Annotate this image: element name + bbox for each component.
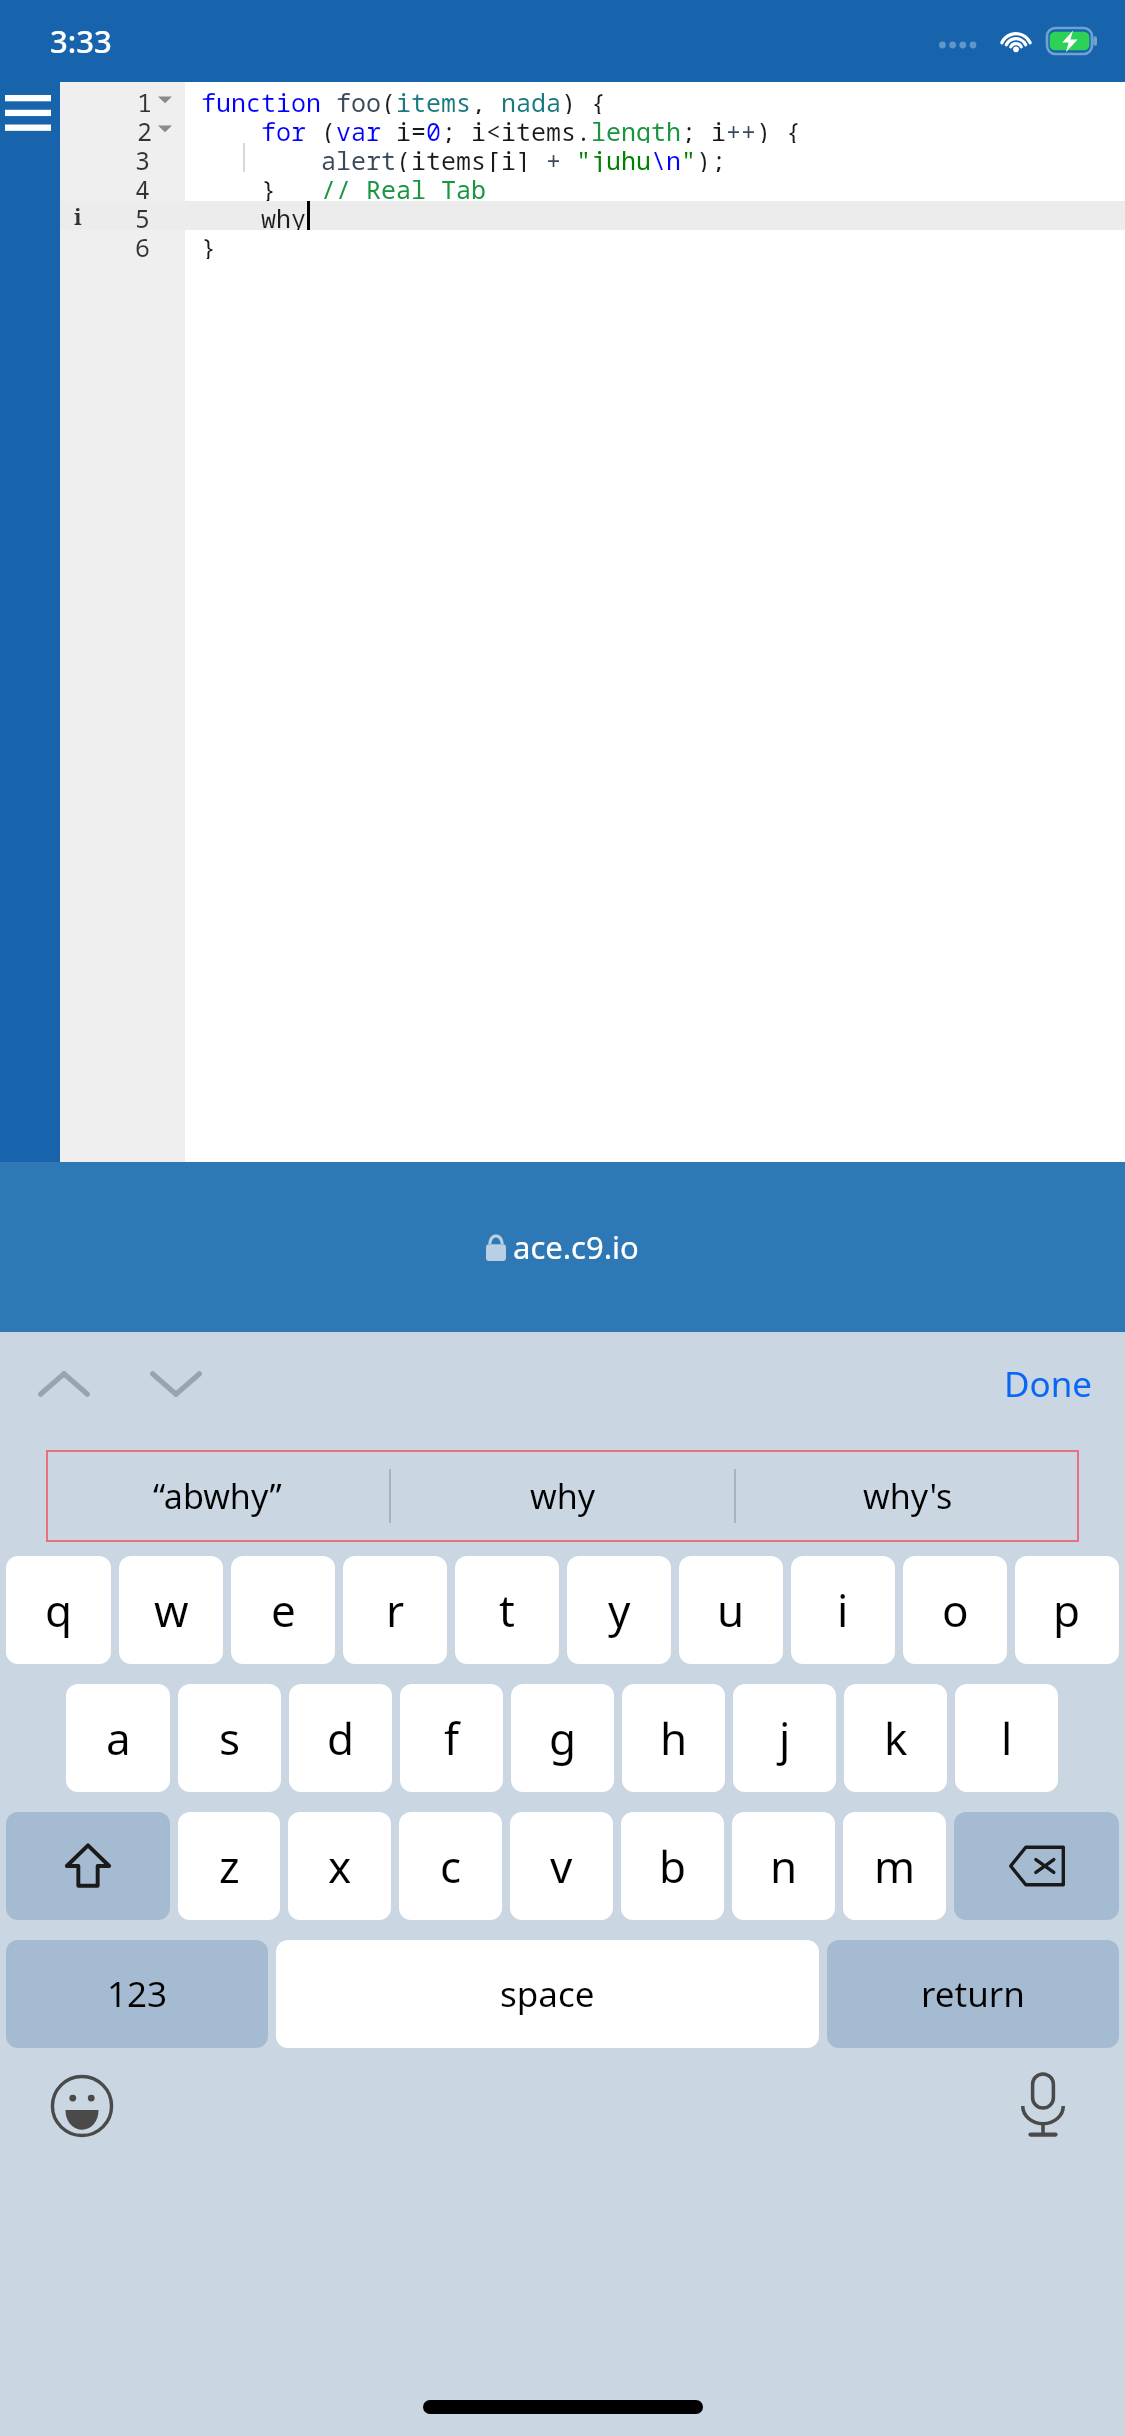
button[interactable]: Shift bbox=[6, 1812, 170, 1920]
button[interactable]: x bbox=[288, 1812, 391, 1920]
button[interactable]: d bbox=[289, 1684, 392, 1792]
button[interactable]: e bbox=[231, 1556, 335, 1664]
button[interactable]: Menu bbox=[0, 82, 60, 1162]
button[interactable]: z bbox=[178, 1812, 280, 1920]
button[interactable]: o bbox=[903, 1556, 1007, 1664]
staticText: t bbox=[499, 1580, 515, 1640]
staticText: alert(items[i] + "juhu\n"); bbox=[201, 143, 727, 172]
button[interactable]: Done bbox=[972, 1344, 1125, 1424]
button[interactable]: r bbox=[343, 1556, 447, 1664]
staticText: f bbox=[444, 1708, 460, 1768]
staticText: h bbox=[660, 1708, 688, 1768]
staticText: z bbox=[219, 1836, 240, 1896]
staticText: s bbox=[219, 1708, 241, 1768]
staticText: w bbox=[154, 1580, 189, 1640]
button[interactable]: ace.c9.io bbox=[0, 1162, 1125, 1332]
staticText: 123 bbox=[107, 1970, 168, 2018]
staticText: space bbox=[500, 1970, 595, 2018]
staticText: for (var i=0; i<items.length; i++) { bbox=[201, 114, 802, 143]
button[interactable]: b bbox=[621, 1812, 724, 1920]
staticText: 2 bbox=[137, 114, 153, 143]
staticText: why's bbox=[863, 1473, 953, 1519]
staticText: d bbox=[327, 1708, 355, 1768]
staticText: i bbox=[74, 201, 82, 230]
button[interactable]: i bbox=[791, 1556, 895, 1664]
staticText: i bbox=[837, 1580, 849, 1640]
staticText: m bbox=[874, 1836, 916, 1896]
button[interactable]: Backspace bbox=[954, 1812, 1119, 1920]
staticText: why bbox=[201, 201, 307, 230]
staticText: k bbox=[884, 1708, 908, 1768]
button[interactable]: Dictation bbox=[1005, 2068, 1081, 2144]
button[interactable]: return bbox=[827, 1940, 1119, 2048]
staticText: c bbox=[440, 1836, 462, 1896]
button[interactable]: c bbox=[399, 1812, 502, 1920]
staticText: ace.c9.io bbox=[513, 1226, 639, 1268]
staticText: } bbox=[201, 230, 217, 259]
button[interactable]: m bbox=[843, 1812, 946, 1920]
button[interactable]: Emoji bbox=[44, 2068, 120, 2144]
staticText: “abwhy” bbox=[153, 1473, 282, 1519]
staticText: 3:33 bbox=[50, 20, 112, 62]
staticText: 6 bbox=[135, 230, 151, 259]
staticText: q bbox=[45, 1580, 73, 1640]
button[interactable]: a bbox=[66, 1684, 170, 1792]
staticText: Done bbox=[1004, 1360, 1093, 1408]
button[interactable]: v bbox=[510, 1812, 613, 1920]
staticText: r bbox=[386, 1580, 405, 1640]
staticText: 3 bbox=[135, 143, 151, 172]
button[interactable]: h bbox=[622, 1684, 725, 1792]
staticText: why bbox=[530, 1473, 596, 1519]
staticText: p bbox=[1053, 1580, 1081, 1640]
staticText: u bbox=[717, 1580, 745, 1640]
button[interactable]: space bbox=[276, 1940, 819, 2048]
staticText: e bbox=[271, 1580, 296, 1640]
staticText: b bbox=[659, 1836, 687, 1896]
button[interactable]: t bbox=[455, 1556, 559, 1664]
staticText: a bbox=[106, 1708, 131, 1768]
button[interactable]: why's bbox=[736, 1450, 1079, 1542]
staticText: } // Real Tab bbox=[201, 172, 487, 201]
staticText: 4 bbox=[135, 172, 151, 201]
staticText: function foo(items, nada) { bbox=[201, 85, 607, 114]
button[interactable]: s bbox=[178, 1684, 281, 1792]
button[interactable]: y bbox=[567, 1556, 671, 1664]
button[interactable]: Next field bbox=[134, 1342, 218, 1426]
button[interactable]: q bbox=[6, 1556, 111, 1664]
staticText: o bbox=[942, 1580, 969, 1640]
button[interactable]: “abwhy” bbox=[46, 1450, 389, 1542]
staticText: j bbox=[779, 1708, 791, 1768]
staticText: g bbox=[549, 1708, 577, 1768]
staticText: x bbox=[328, 1836, 352, 1896]
staticText: 1 bbox=[137, 85, 153, 114]
staticText: v bbox=[550, 1836, 573, 1896]
button[interactable]: l bbox=[955, 1684, 1058, 1792]
staticText: y bbox=[608, 1580, 631, 1640]
button[interactable]: p bbox=[1015, 1556, 1119, 1664]
button[interactable]: 123 bbox=[6, 1940, 268, 2048]
button[interactable]: w bbox=[119, 1556, 223, 1664]
staticText: 5 bbox=[135, 201, 151, 230]
button[interactable]: u bbox=[679, 1556, 783, 1664]
staticText: l bbox=[1001, 1708, 1013, 1768]
button[interactable]: g bbox=[511, 1684, 614, 1792]
button[interactable]: n bbox=[732, 1812, 835, 1920]
button[interactable]: f bbox=[400, 1684, 503, 1792]
button[interactable]: k bbox=[844, 1684, 947, 1792]
button[interactable]: Previous field bbox=[22, 1342, 106, 1426]
staticText: n bbox=[770, 1836, 798, 1896]
button[interactable]: j bbox=[733, 1684, 836, 1792]
staticText: return bbox=[921, 1970, 1025, 2018]
button[interactable]: why bbox=[391, 1450, 734, 1542]
